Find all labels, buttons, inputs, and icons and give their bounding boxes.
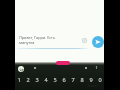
button[interactable]: 9 [86,75,95,85]
staticText: 0 [98,76,102,84]
staticText: 4 [44,76,48,84]
staticText: минутка [19,40,35,45]
button[interactable]: Emoji [80,36,89,45]
staticText: 3 [35,76,39,84]
button[interactable]: Microphone [95,66,98,69]
button[interactable]: 4 [41,75,50,85]
button[interactable]: 5 [50,75,59,85]
button[interactable]: 8 [77,75,86,85]
staticText: 1 [17,76,21,84]
staticText: 9 [89,76,93,84]
staticText: 8 [80,76,84,84]
button[interactable]: 2 [23,75,32,85]
staticText: Привет, Гарри. Есть [19,35,55,40]
button[interactable]: Google [18,66,24,72]
staticText: 6 [62,76,66,84]
button[interactable]: Sticker [56,61,70,65]
staticText: Inoxch [88,84,98,88]
button[interactable]: 3 [32,75,41,85]
staticText: 7 [71,76,75,84]
button[interactable]: 1 [15,75,23,85]
button[interactable]: 6 [59,75,68,85]
button[interactable]: 7 [68,75,77,85]
staticText: 2 [26,76,30,84]
button[interactable]: 0 [95,75,104,85]
staticText: 5 [53,76,57,84]
button[interactable]: Send [92,36,104,48]
